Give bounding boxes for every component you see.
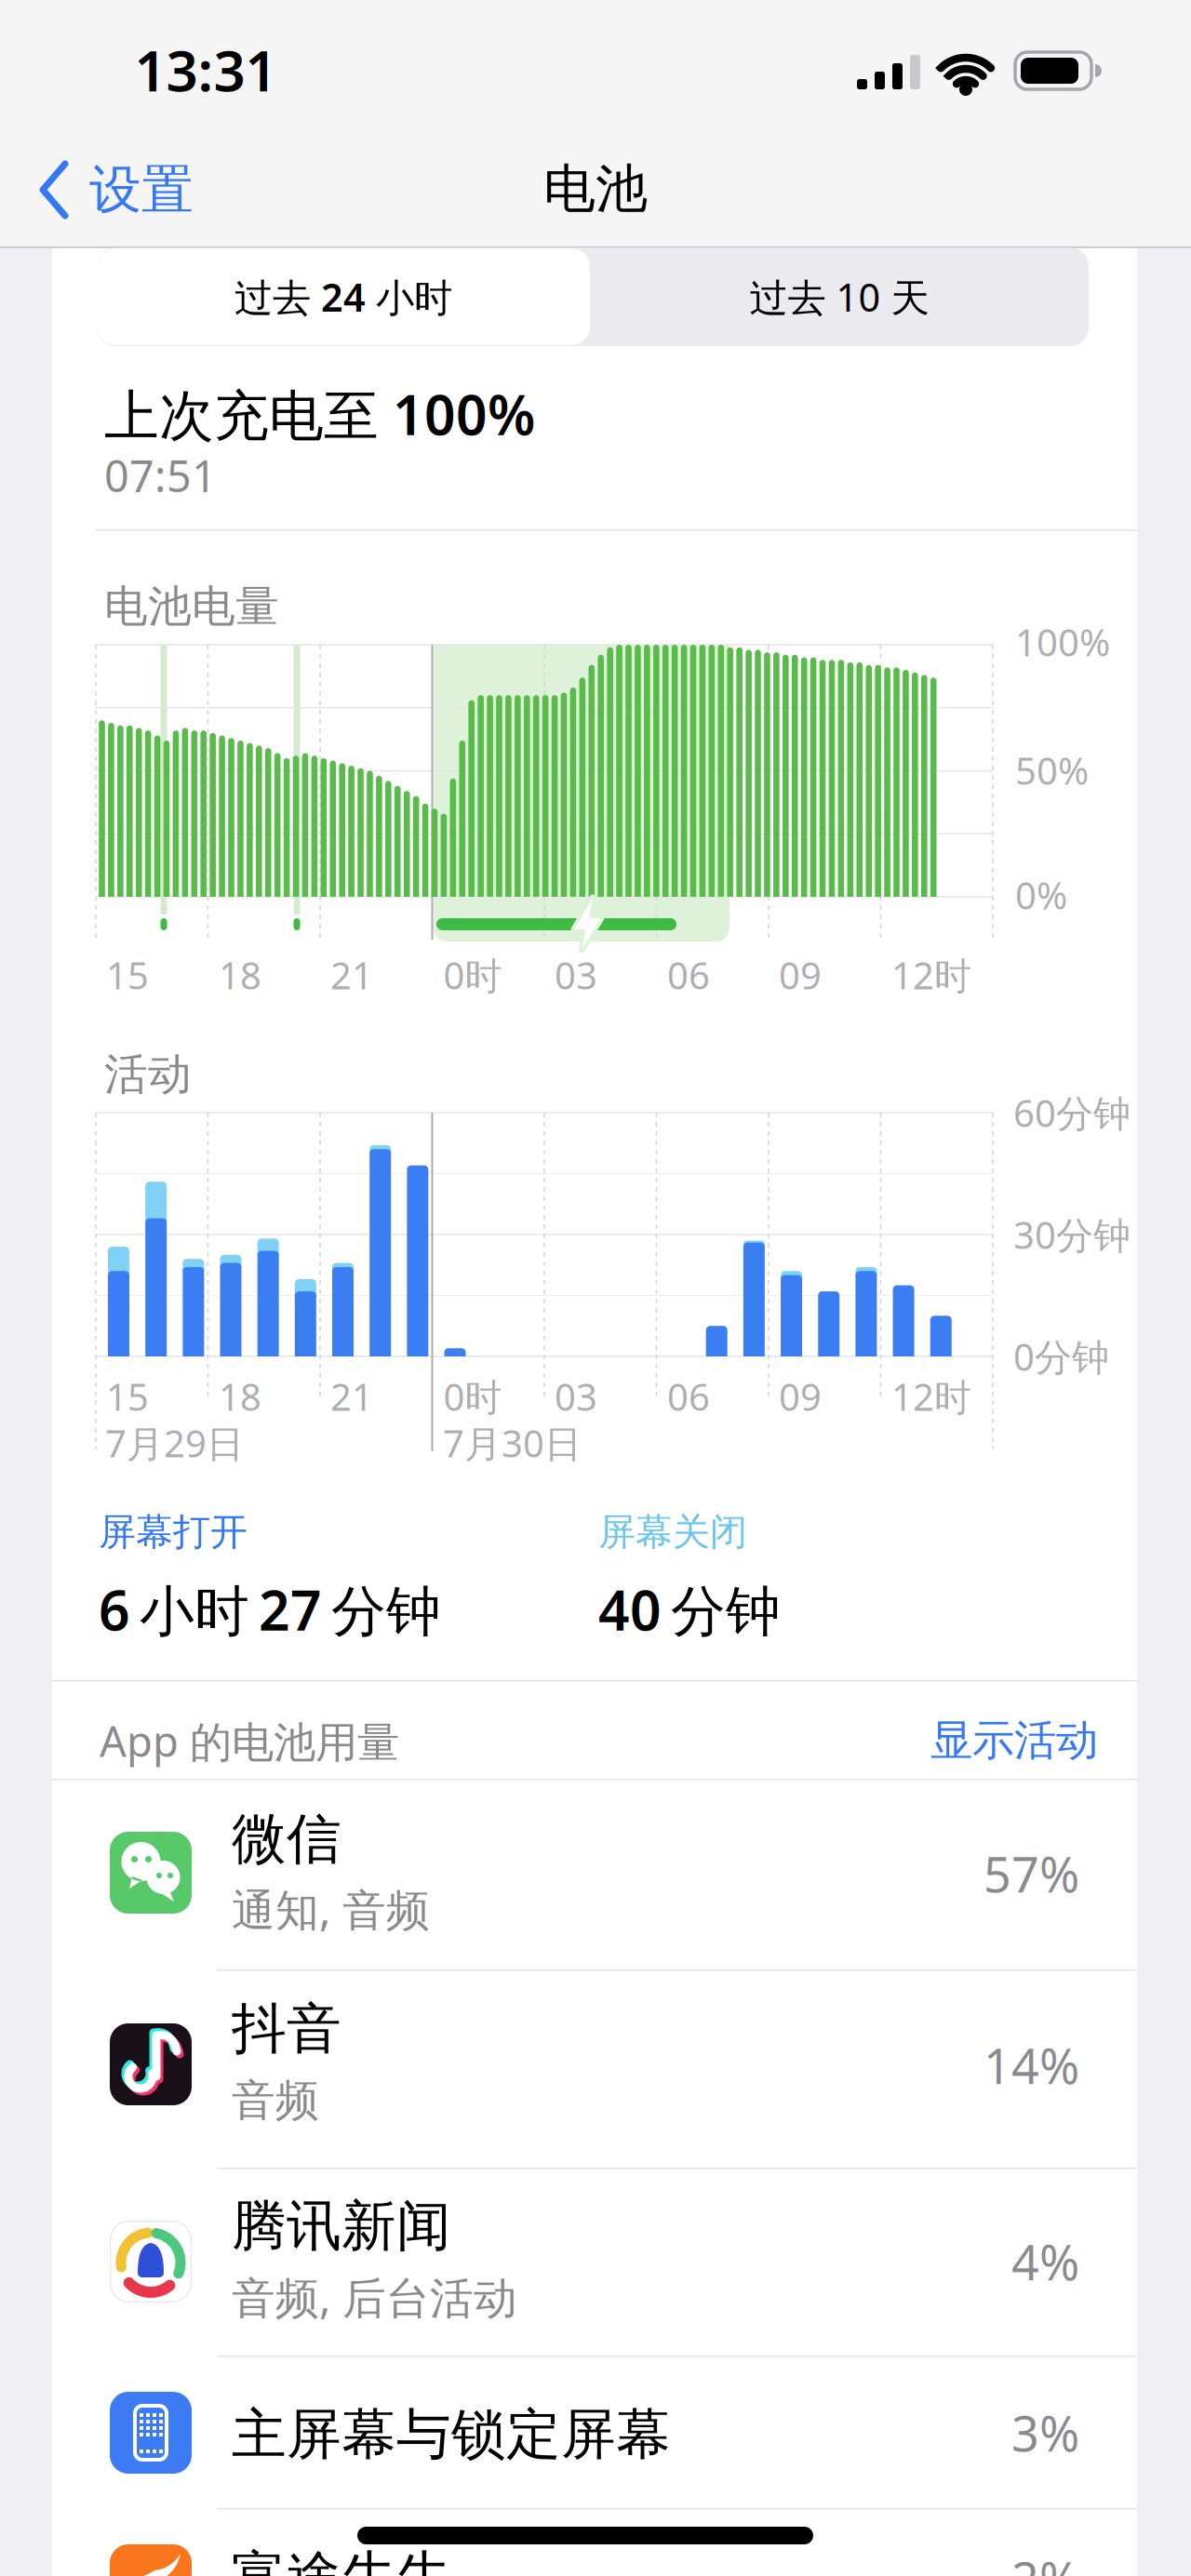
staticText: 03	[555, 950, 597, 1000]
staticText: 2%	[1011, 2547, 1079, 2576]
button[interactable]: 富途牛牛	[52, 2509, 1137, 2576]
staticText: 03	[555, 1372, 597, 1421]
staticText: 7月30日	[443, 1418, 582, 1468]
button[interactable]: 抖音	[52, 1970, 1137, 2169]
staticText: 50%	[1015, 746, 1089, 795]
staticText: 60分钟	[1013, 1088, 1131, 1137]
staticText: 06	[667, 1372, 710, 1421]
staticText: 57%	[984, 1842, 1079, 1906]
staticText: 音频	[232, 2074, 319, 2127]
staticText: 18	[219, 950, 261, 1000]
staticText: 活动	[104, 1048, 192, 1101]
staticText: 0分钟	[1013, 1332, 1109, 1381]
button[interactable]: 主屏幕与锁定屏幕	[52, 2356, 1137, 2509]
staticText: 40 分钟	[598, 1573, 781, 1646]
staticText: 15	[106, 950, 149, 1000]
staticText: 电池电量	[104, 580, 279, 633]
button[interactable]: 设置	[37, 158, 223, 221]
staticText: 12时	[891, 1372, 971, 1421]
staticText: 微信	[232, 1806, 341, 1873]
staticText: 上次充电至 100%	[104, 378, 535, 450]
button[interactable]: 过去 24 小时	[97, 248, 590, 345]
staticText: 30分钟	[1013, 1210, 1131, 1259]
staticText: 过去 24 小时	[234, 271, 452, 322]
staticText: 抖音	[232, 1995, 341, 2063]
staticText: 06	[667, 950, 710, 1000]
staticText: 21	[330, 1372, 373, 1421]
staticText: 音频, 后台活动	[232, 2268, 517, 2326]
staticText: 0时	[443, 950, 502, 1000]
staticText: 0%	[1015, 870, 1067, 920]
staticText: 腾讯新闻	[232, 2193, 451, 2260]
staticText: 07:51	[104, 447, 217, 504]
staticText: 屏幕打开	[99, 1509, 248, 1555]
button[interactable]: 腾讯新闻	[52, 2169, 1137, 2356]
button[interactable]: 显示活动	[819, 1715, 1098, 1767]
staticText: 100%	[1015, 617, 1110, 667]
staticText: 显示活动	[930, 1715, 1098, 1767]
staticText: App 的电池用量	[100, 1712, 399, 1769]
staticText: 屏幕关闭	[598, 1509, 747, 1555]
staticText: 15	[106, 1372, 149, 1421]
staticText: 过去 10 天	[749, 271, 929, 322]
staticText: 13:31	[134, 33, 277, 107]
staticText: 09	[779, 1372, 822, 1421]
staticText: 设置	[89, 158, 194, 222]
staticText: 09	[779, 950, 822, 1000]
staticText: 0时	[443, 1372, 502, 1421]
button[interactable]: 过去 10 天	[590, 248, 1089, 345]
staticText: 6 小时 27 分钟	[99, 1573, 441, 1646]
staticText: 14%	[984, 2033, 1079, 2097]
staticText: 主屏幕与锁定屏幕	[232, 2401, 671, 2468]
staticText: 4%	[1011, 2229, 1079, 2294]
staticText: 12时	[891, 950, 971, 1000]
staticText: 电池	[543, 157, 648, 221]
staticText: 通知, 音频	[232, 1880, 430, 1938]
staticText: 7月29日	[105, 1418, 244, 1468]
staticText: 21	[330, 950, 373, 1000]
staticText: 富途牛牛	[232, 2543, 451, 2576]
staticText: 3%	[1011, 2401, 1079, 2465]
button[interactable]: 微信	[52, 1780, 1137, 1970]
staticText: 18	[219, 1372, 261, 1421]
